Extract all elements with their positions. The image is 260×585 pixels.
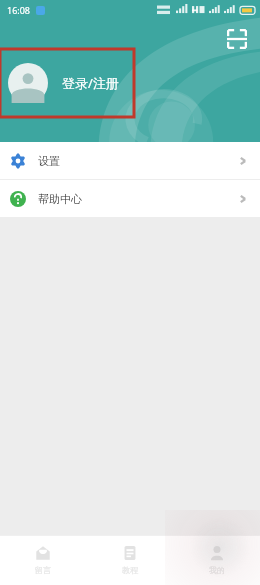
button[interactable]: 留言 — [0, 535, 86, 585]
button[interactable]: 教程 — [86, 535, 173, 585]
button[interactable]: 帮助中心 — [0, 180, 260, 217]
button[interactable]: 设置 — [0, 142, 260, 179]
button[interactable]: Scan QR code — [224, 26, 250, 52]
staticText: 留言 — [35, 565, 51, 575]
staticText: 登录/注册 — [62, 74, 119, 92]
staticText: 我的 — [209, 565, 225, 575]
button[interactable]: 登录/注册 — [0, 49, 133, 117]
staticText: 教程 — [122, 565, 138, 575]
staticText: 设置 — [38, 154, 60, 168]
staticText: 16:08 — [7, 4, 31, 16]
staticText: 帮助中心 — [38, 192, 82, 206]
button[interactable]: 我的 — [173, 535, 260, 585]
